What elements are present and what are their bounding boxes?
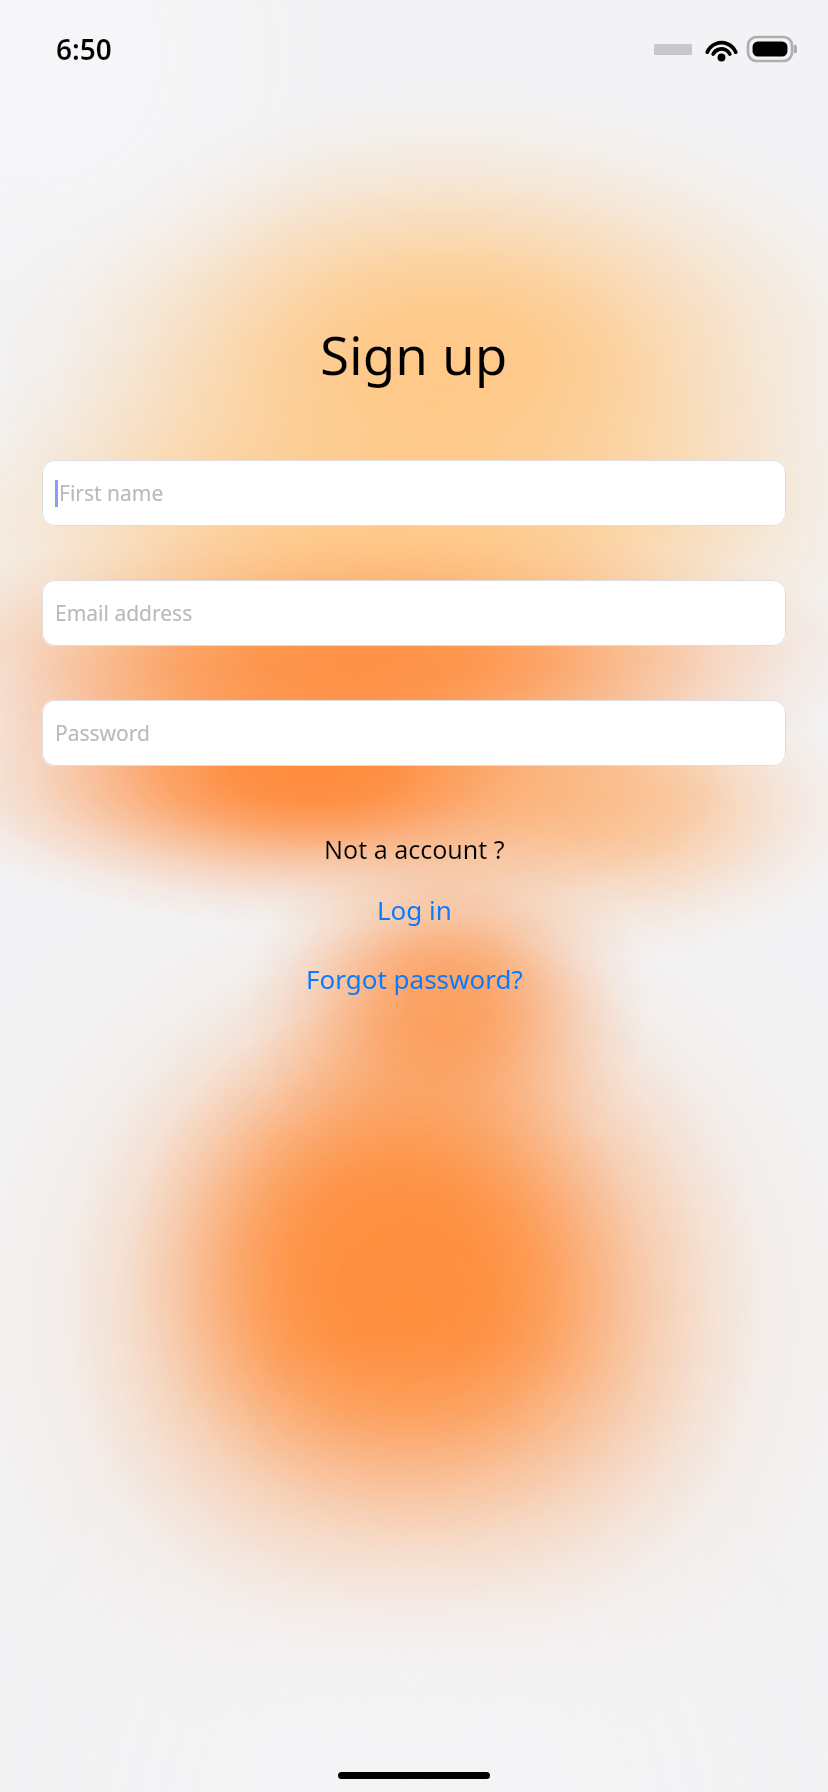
button[interactable]: Password	[42, 700, 786, 766]
button[interactable]: Log in	[367, 888, 462, 931]
staticText: Log in	[377, 892, 452, 927]
button[interactable]: First name	[42, 460, 786, 526]
staticText: Sign up	[320, 318, 508, 390]
staticText: Password	[55, 719, 150, 748]
staticText: Email address	[55, 599, 193, 628]
button[interactable]: Not a account ?	[314, 828, 515, 870]
button[interactable]: Email address	[42, 580, 786, 646]
staticText: 6:50	[56, 30, 112, 68]
staticText: First name	[59, 479, 164, 508]
other: Wi-Fi	[706, 38, 737, 60]
staticText: Forgot password?	[306, 961, 523, 996]
other: Battery full	[748, 37, 798, 61]
staticText: Not a account ?	[324, 832, 505, 866]
button[interactable]: Forgot password?	[296, 957, 533, 1000]
